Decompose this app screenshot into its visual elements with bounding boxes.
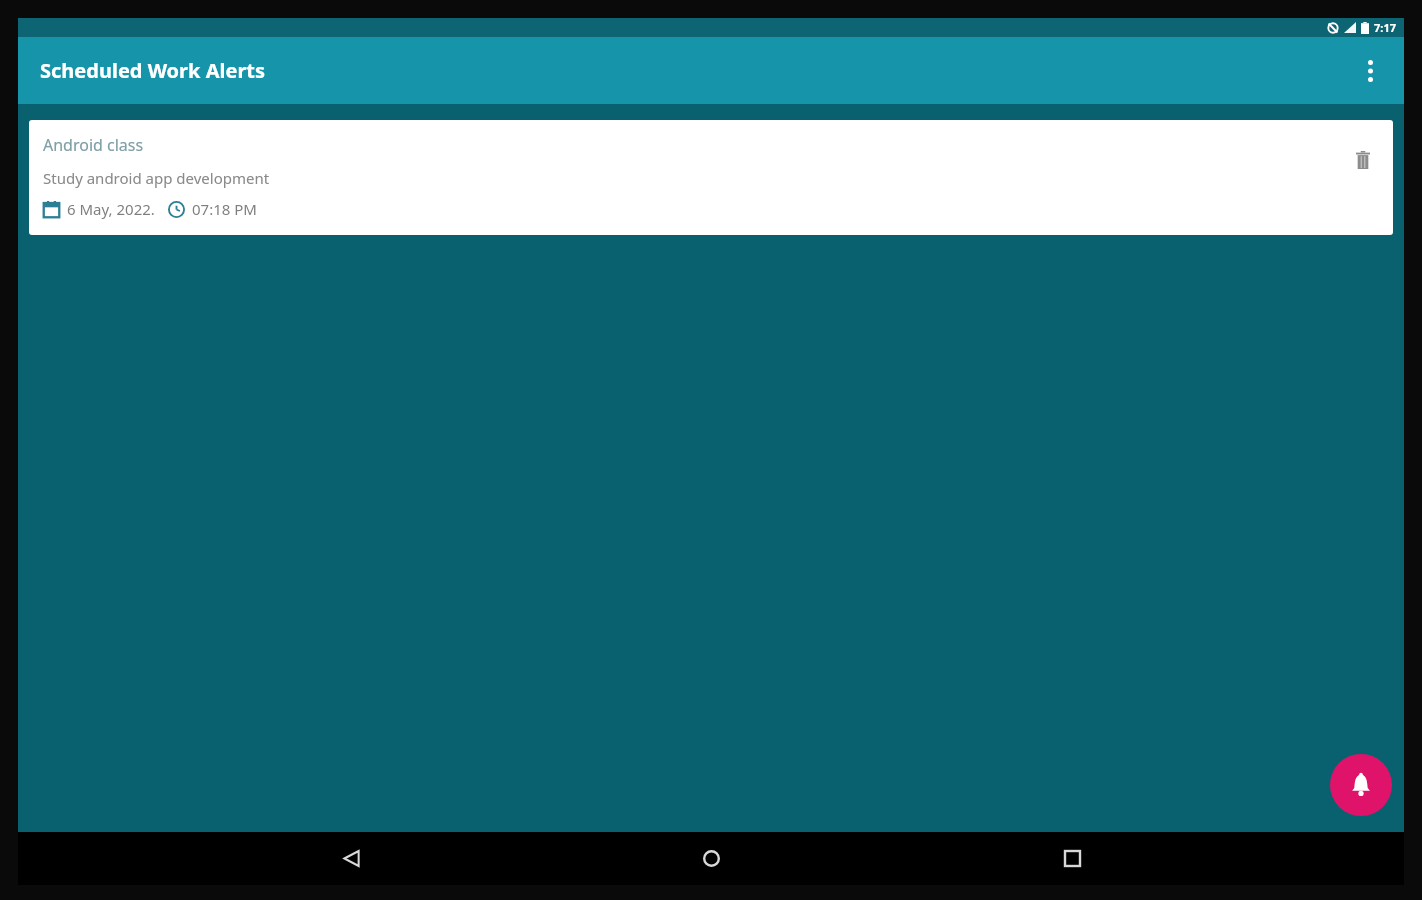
button[interactable]: Recent apps xyxy=(1044,832,1100,885)
staticText: 6 May, 2022. xyxy=(67,199,155,219)
staticText: 7:17 xyxy=(1374,20,1396,35)
button[interactable]: Android class xyxy=(29,120,1393,235)
button[interactable]: Add reminder notification xyxy=(1330,754,1392,816)
button[interactable]: Home xyxy=(683,832,739,885)
button[interactable]: More options xyxy=(1346,47,1394,95)
staticText: 07:18 PM xyxy=(192,199,257,219)
button[interactable]: Back xyxy=(323,832,379,885)
staticText: Android class xyxy=(43,134,144,156)
staticText: Scheduled Work Alerts xyxy=(40,57,266,84)
button[interactable]: Delete reminder xyxy=(1343,140,1383,180)
staticText: Study android app development xyxy=(43,168,270,188)
